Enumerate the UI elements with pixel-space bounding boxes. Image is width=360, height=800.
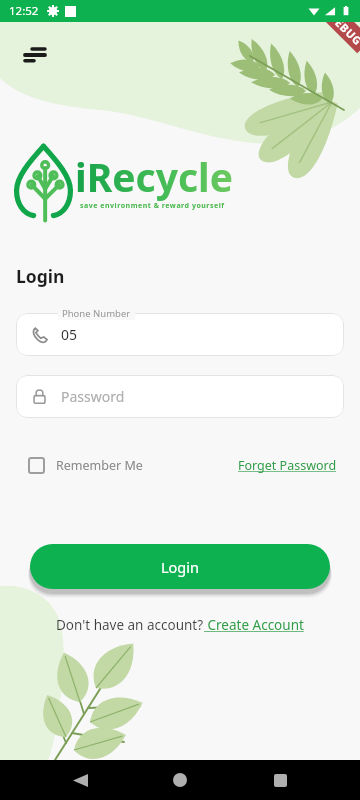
button[interactable]: Home xyxy=(160,760,200,800)
button[interactable]: Menu xyxy=(14,34,56,76)
staticText: Don't have an account? xyxy=(56,616,204,634)
staticText: DEBUG xyxy=(326,22,360,48)
staticText: Forget Password xyxy=(238,457,337,474)
staticText: 12:52 xyxy=(9,3,39,19)
button[interactable]: Forget Password xyxy=(238,457,337,474)
staticText: 05 xyxy=(61,325,78,344)
staticText: Login xyxy=(16,264,65,288)
button[interactable]: Login xyxy=(30,544,330,589)
button[interactable]: Password xyxy=(16,375,344,418)
button[interactable]: 05 xyxy=(16,313,344,356)
button[interactable]: Recent apps xyxy=(260,760,300,800)
staticText: Phone Number xyxy=(62,307,131,320)
staticText: iRecycle xyxy=(75,150,233,203)
staticText: Remember Me xyxy=(56,457,143,474)
staticText: Login xyxy=(161,557,199,577)
button[interactable]: Create Account xyxy=(204,616,304,634)
staticText: Password xyxy=(61,387,125,406)
staticText: save environment & reward yourself xyxy=(80,201,225,211)
button[interactable]: Back xyxy=(60,760,100,800)
staticText: Create Account xyxy=(204,616,304,634)
button[interactable]: Remember Me xyxy=(28,457,143,474)
